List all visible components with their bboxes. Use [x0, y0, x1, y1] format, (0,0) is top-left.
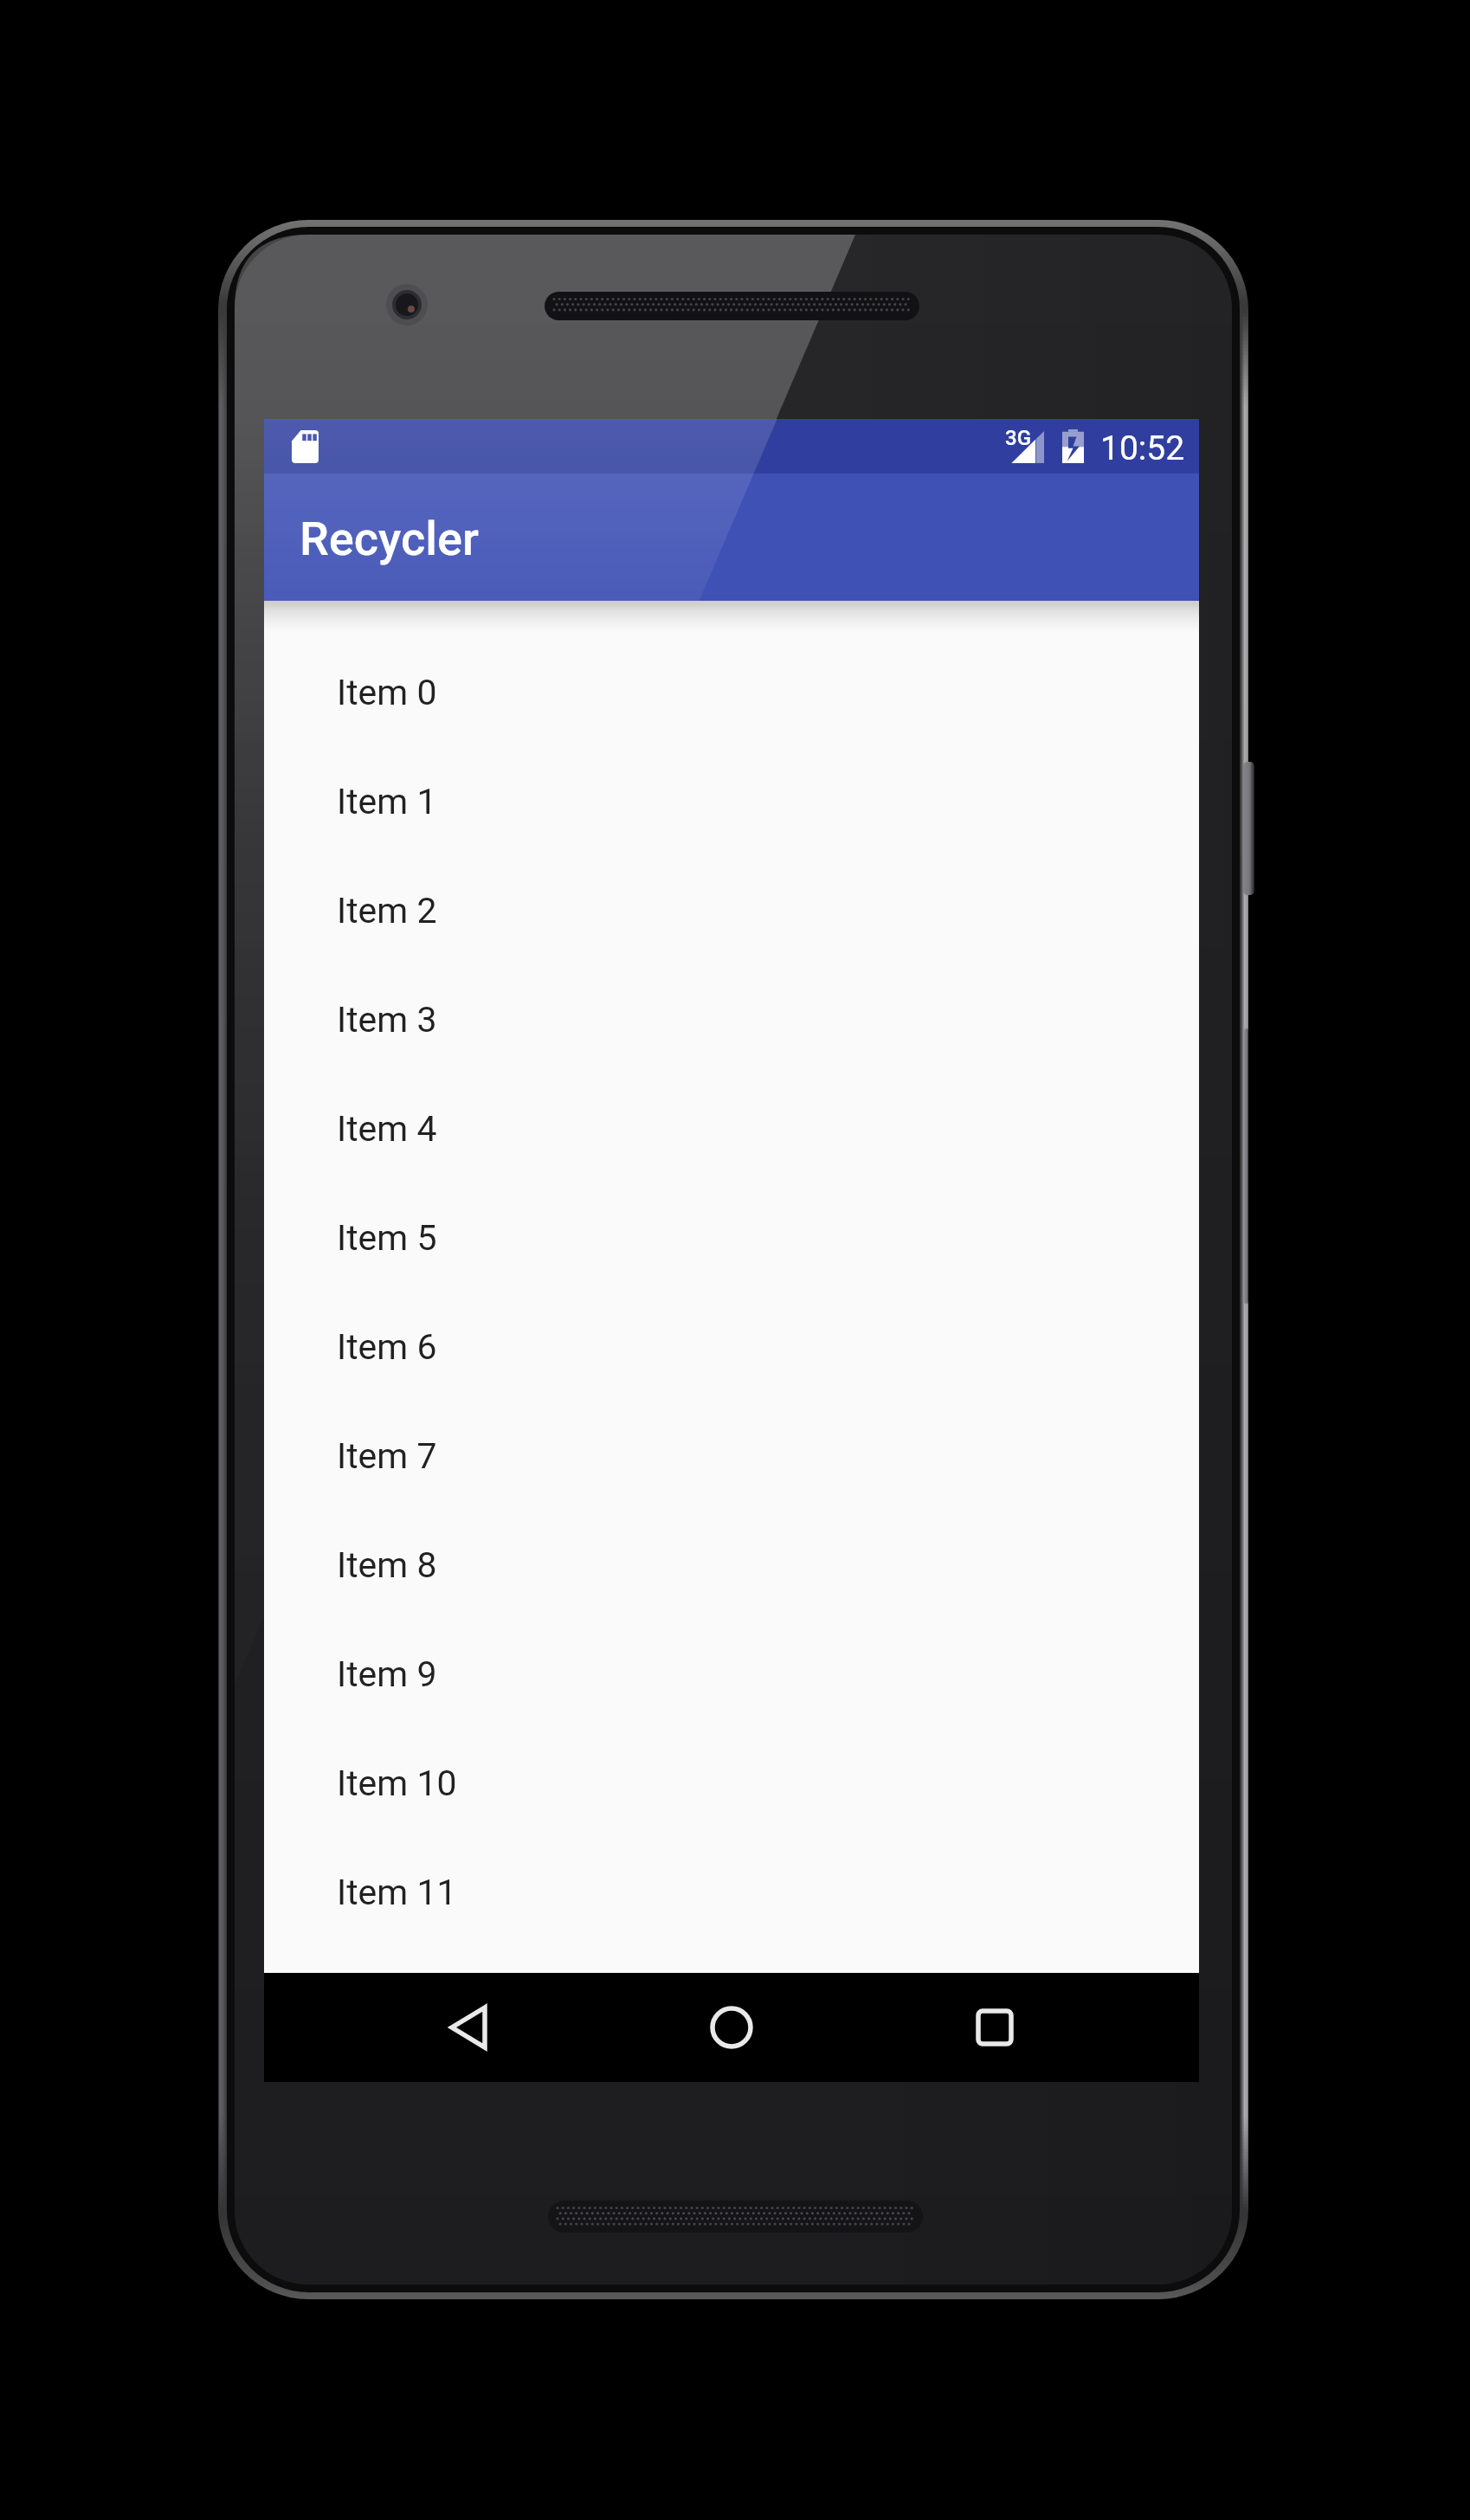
- button[interactable]: Item 10: [264, 1729, 1199, 1838]
- button[interactable]: Home: [690, 1986, 773, 2069]
- staticText: 10:52: [1100, 429, 1185, 468]
- button[interactable]: Item 5: [264, 1183, 1199, 1292]
- staticText: Item 3: [337, 999, 437, 1041]
- staticText: Item 5: [337, 1217, 437, 1259]
- button[interactable]: Item 7: [264, 1402, 1199, 1511]
- staticText: Item 11: [337, 1872, 457, 1913]
- staticText: Item 10: [337, 1763, 457, 1804]
- button[interactable]: Item 12: [264, 1947, 1199, 2056]
- button[interactable]: Item 1: [264, 747, 1199, 856]
- staticText: 3G: [1005, 426, 1031, 450]
- button[interactable]: Item 9: [264, 1620, 1199, 1729]
- staticText: Item 7: [337, 1435, 437, 1477]
- button[interactable]: Recent apps: [953, 1986, 1036, 2069]
- button[interactable]: Item 8: [264, 1511, 1199, 1620]
- staticText: Item 1: [337, 781, 437, 822]
- button[interactable]: Item 2: [264, 856, 1199, 965]
- staticText: Item 6: [337, 1326, 437, 1368]
- button[interactable]: Back: [427, 1986, 510, 2069]
- button[interactable]: Item 11: [264, 1838, 1199, 1947]
- staticText: Recycler: [300, 512, 480, 566]
- staticText: Item 0: [337, 672, 437, 713]
- button[interactable]: Item 3: [264, 965, 1199, 1074]
- staticText: Item 4: [337, 1108, 437, 1150]
- button[interactable]: Item 6: [264, 1292, 1199, 1402]
- staticText: Item 9: [337, 1653, 437, 1695]
- staticText: Item 8: [337, 1544, 437, 1586]
- button[interactable]: Item 0: [264, 638, 1199, 747]
- staticText: Item 2: [337, 890, 437, 931]
- button[interactable]: Item 4: [264, 1074, 1199, 1183]
